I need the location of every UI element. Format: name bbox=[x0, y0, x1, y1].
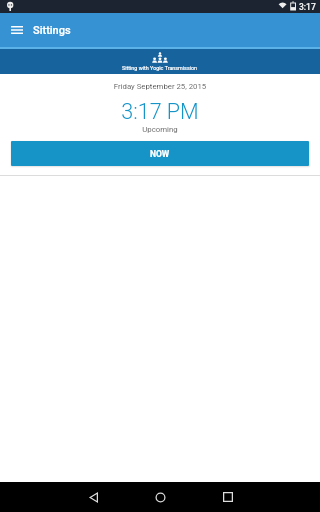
staticText: 3:17 PM bbox=[0, 99, 320, 124]
button[interactable]: Recent apps bbox=[206, 482, 250, 512]
staticText: 3:17 bbox=[299, 2, 316, 12]
button[interactable]: NOW bbox=[11, 141, 309, 166]
staticText: Upcoming bbox=[0, 125, 320, 134]
staticText: Friday September 25, 2015 bbox=[0, 82, 320, 91]
staticText: Sittings bbox=[33, 24, 71, 37]
button[interactable]: Sitting with Yogic Transmission bbox=[0, 49, 320, 74]
button[interactable]: Back bbox=[71, 482, 115, 512]
staticText: NOW bbox=[150, 149, 170, 159]
button[interactable]: Home bbox=[138, 482, 182, 512]
staticText: Sitting with Yogic Transmission bbox=[122, 65, 198, 71]
button[interactable]: Open navigation drawer bbox=[0, 13, 34, 47]
